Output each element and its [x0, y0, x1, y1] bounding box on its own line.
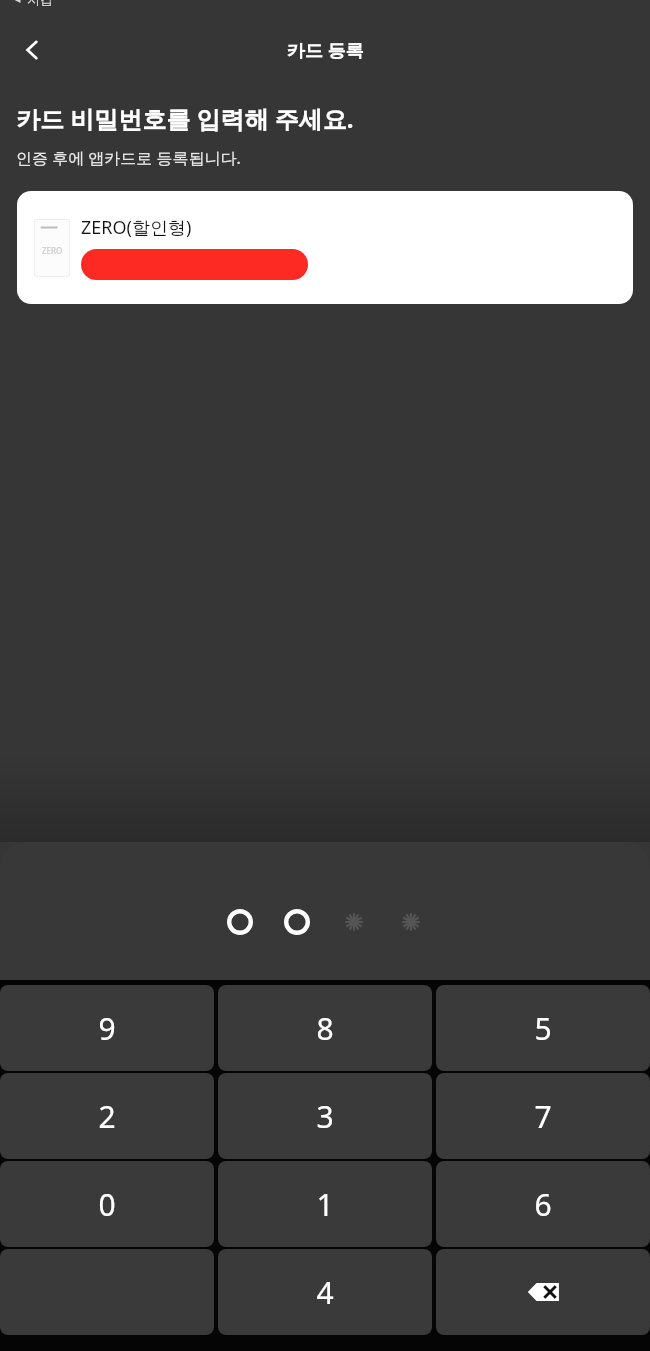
button[interactable]: 뒤로 [8, 26, 56, 74]
staticText: 1 [316, 1184, 334, 1225]
button[interactable]: 1 [218, 1161, 432, 1247]
button[interactable]: 4 [218, 1249, 432, 1335]
staticText: 7 [534, 1096, 552, 1137]
staticText: 0 [98, 1184, 116, 1225]
staticText: 4 [316, 1272, 334, 1313]
staticText: 2 [98, 1096, 116, 1137]
staticText: 지갑 [27, 0, 53, 7]
button[interactable]: 7 [436, 1073, 650, 1159]
button[interactable]: 3 [218, 1073, 432, 1159]
button[interactable]: 8 [218, 985, 432, 1071]
button[interactable]: ZERO [17, 191, 633, 304]
button[interactable]: 9 [0, 985, 214, 1071]
button[interactable]: 2 [0, 1073, 214, 1159]
staticText: 9 [98, 1008, 116, 1049]
button[interactable]: 0 [0, 1161, 214, 1247]
staticText: 카드 비밀번호를 입력해 주세요. [16, 102, 354, 135]
staticText: ZERO(할인형) [81, 215, 192, 240]
staticText: ZERO [42, 245, 63, 256]
button[interactable]: 6 [436, 1161, 650, 1247]
staticText: 6 [534, 1184, 552, 1225]
staticText: 5 [534, 1008, 552, 1049]
staticText: 8 [316, 1008, 334, 1049]
staticText: 카드 등록 [287, 38, 364, 63]
button[interactable]: 지우기 [436, 1249, 650, 1335]
button[interactable]: 5 [436, 985, 650, 1071]
staticText: 3 [316, 1096, 334, 1137]
staticText: 인증 후에 앱카드로 등록됩니다. [16, 147, 241, 169]
